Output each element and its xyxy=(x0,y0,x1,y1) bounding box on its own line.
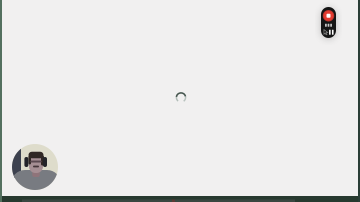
button[interactable]: Stop screen recording xyxy=(321,7,336,38)
button[interactable]: Your camera xyxy=(12,144,58,190)
